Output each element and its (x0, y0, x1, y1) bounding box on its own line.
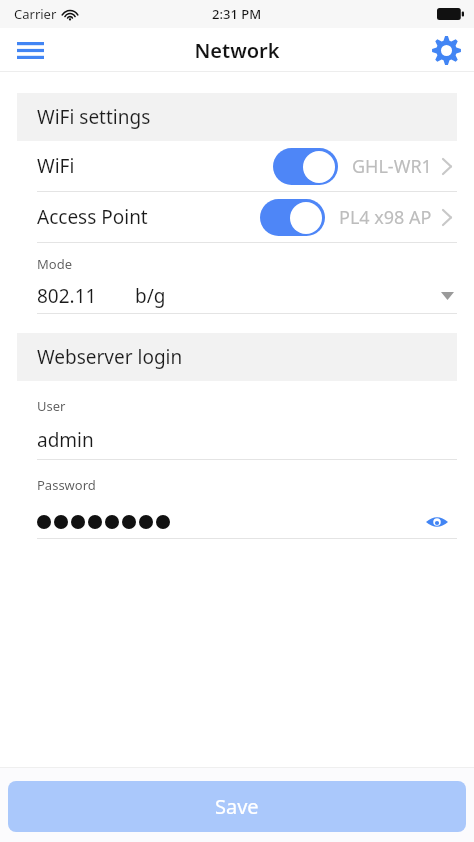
staticText: Network (194, 37, 280, 64)
staticText: Mode (37, 255, 72, 273)
staticText: WiFi (37, 153, 75, 179)
staticText: Password (37, 476, 96, 494)
staticText: PL4 x98 AP (339, 205, 432, 230)
button[interactable]: Toggle (260, 199, 325, 236)
staticText: Access Point (37, 204, 148, 230)
staticText: User (37, 397, 66, 415)
staticText: GHL-WR1 (352, 154, 432, 179)
button[interactable]: Save (8, 781, 466, 832)
button[interactable]: Menu (8, 28, 52, 72)
button[interactable]: Settings (424, 28, 468, 72)
button[interactable]: Mode (0, 243, 474, 313)
staticText: Carrier (14, 5, 57, 23)
button[interactable]: WiFi (0, 141, 474, 191)
staticText: b/g (135, 283, 166, 309)
staticText: admin (37, 427, 94, 453)
staticText: WiFi settings (37, 104, 151, 130)
button[interactable]: Show password (420, 506, 454, 538)
staticText: 802.11 (37, 283, 97, 309)
button[interactable]: User (0, 381, 474, 459)
staticText: Webserver login (37, 344, 183, 370)
button[interactable]: Toggle (273, 148, 338, 185)
staticText: 2:31 PM (212, 5, 262, 23)
button[interactable]: Password (0, 460, 474, 538)
staticText: Save (215, 793, 259, 820)
button[interactable]: Access Point (0, 192, 474, 242)
